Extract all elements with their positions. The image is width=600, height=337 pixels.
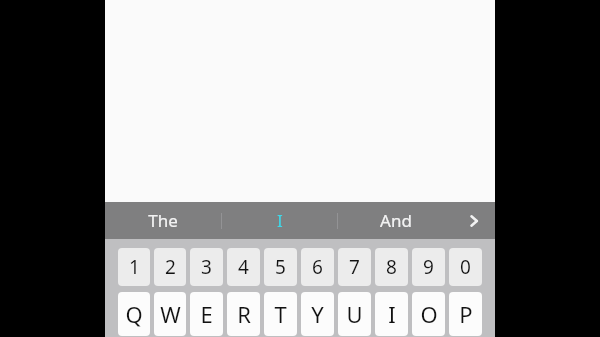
staticText: P — [459, 299, 473, 329]
staticText: Q — [125, 299, 143, 329]
button[interactable]: Q — [118, 292, 150, 336]
staticText: 3 — [201, 254, 212, 280]
staticText: W — [160, 299, 181, 329]
button[interactable]: 5 — [264, 248, 297, 286]
button[interactable]: 0 — [449, 248, 482, 286]
staticText: The — [148, 209, 178, 232]
staticText: 4 — [238, 254, 249, 280]
button[interactable]: And — [338, 202, 453, 239]
staticText: I — [277, 209, 283, 232]
button[interactable]: P — [449, 292, 482, 336]
button[interactable]: 4 — [227, 248, 260, 286]
button[interactable]: I — [375, 292, 408, 336]
button[interactable]: 9 — [412, 248, 445, 286]
button[interactable]: Y — [301, 292, 334, 336]
button[interactable]: 8 — [375, 248, 408, 286]
button[interactable]: 2 — [154, 248, 186, 286]
button[interactable]: 3 — [190, 248, 223, 286]
button[interactable]: More suggestions — [453, 202, 495, 239]
staticText: U — [346, 299, 363, 329]
button[interactable]: W — [154, 292, 186, 336]
staticText: 7 — [349, 254, 360, 280]
button[interactable]: 7 — [338, 248, 371, 286]
staticText: O — [420, 299, 438, 329]
staticText: 2 — [165, 254, 176, 280]
button[interactable]: T — [264, 292, 297, 336]
staticText: 6 — [312, 254, 323, 280]
staticText: 0 — [460, 254, 471, 280]
button[interactable]: O — [412, 292, 445, 336]
button[interactable]: U — [338, 292, 371, 336]
button[interactable]: E — [190, 292, 223, 336]
staticText: 1 — [129, 254, 140, 280]
staticText: 9 — [423, 254, 434, 280]
staticText: 8 — [386, 254, 397, 280]
staticText: I — [388, 299, 396, 329]
button[interactable]: The — [105, 202, 221, 239]
staticText: E — [200, 299, 213, 329]
staticText: Y — [311, 299, 324, 329]
button[interactable]: I — [222, 202, 337, 239]
staticText: 5 — [275, 254, 286, 280]
staticText: And — [380, 209, 412, 232]
staticText: T — [274, 299, 287, 329]
button[interactable]: 1 — [118, 248, 150, 286]
button[interactable]: R — [227, 292, 260, 336]
staticText: R — [237, 299, 251, 329]
button[interactable]: 6 — [301, 248, 334, 286]
